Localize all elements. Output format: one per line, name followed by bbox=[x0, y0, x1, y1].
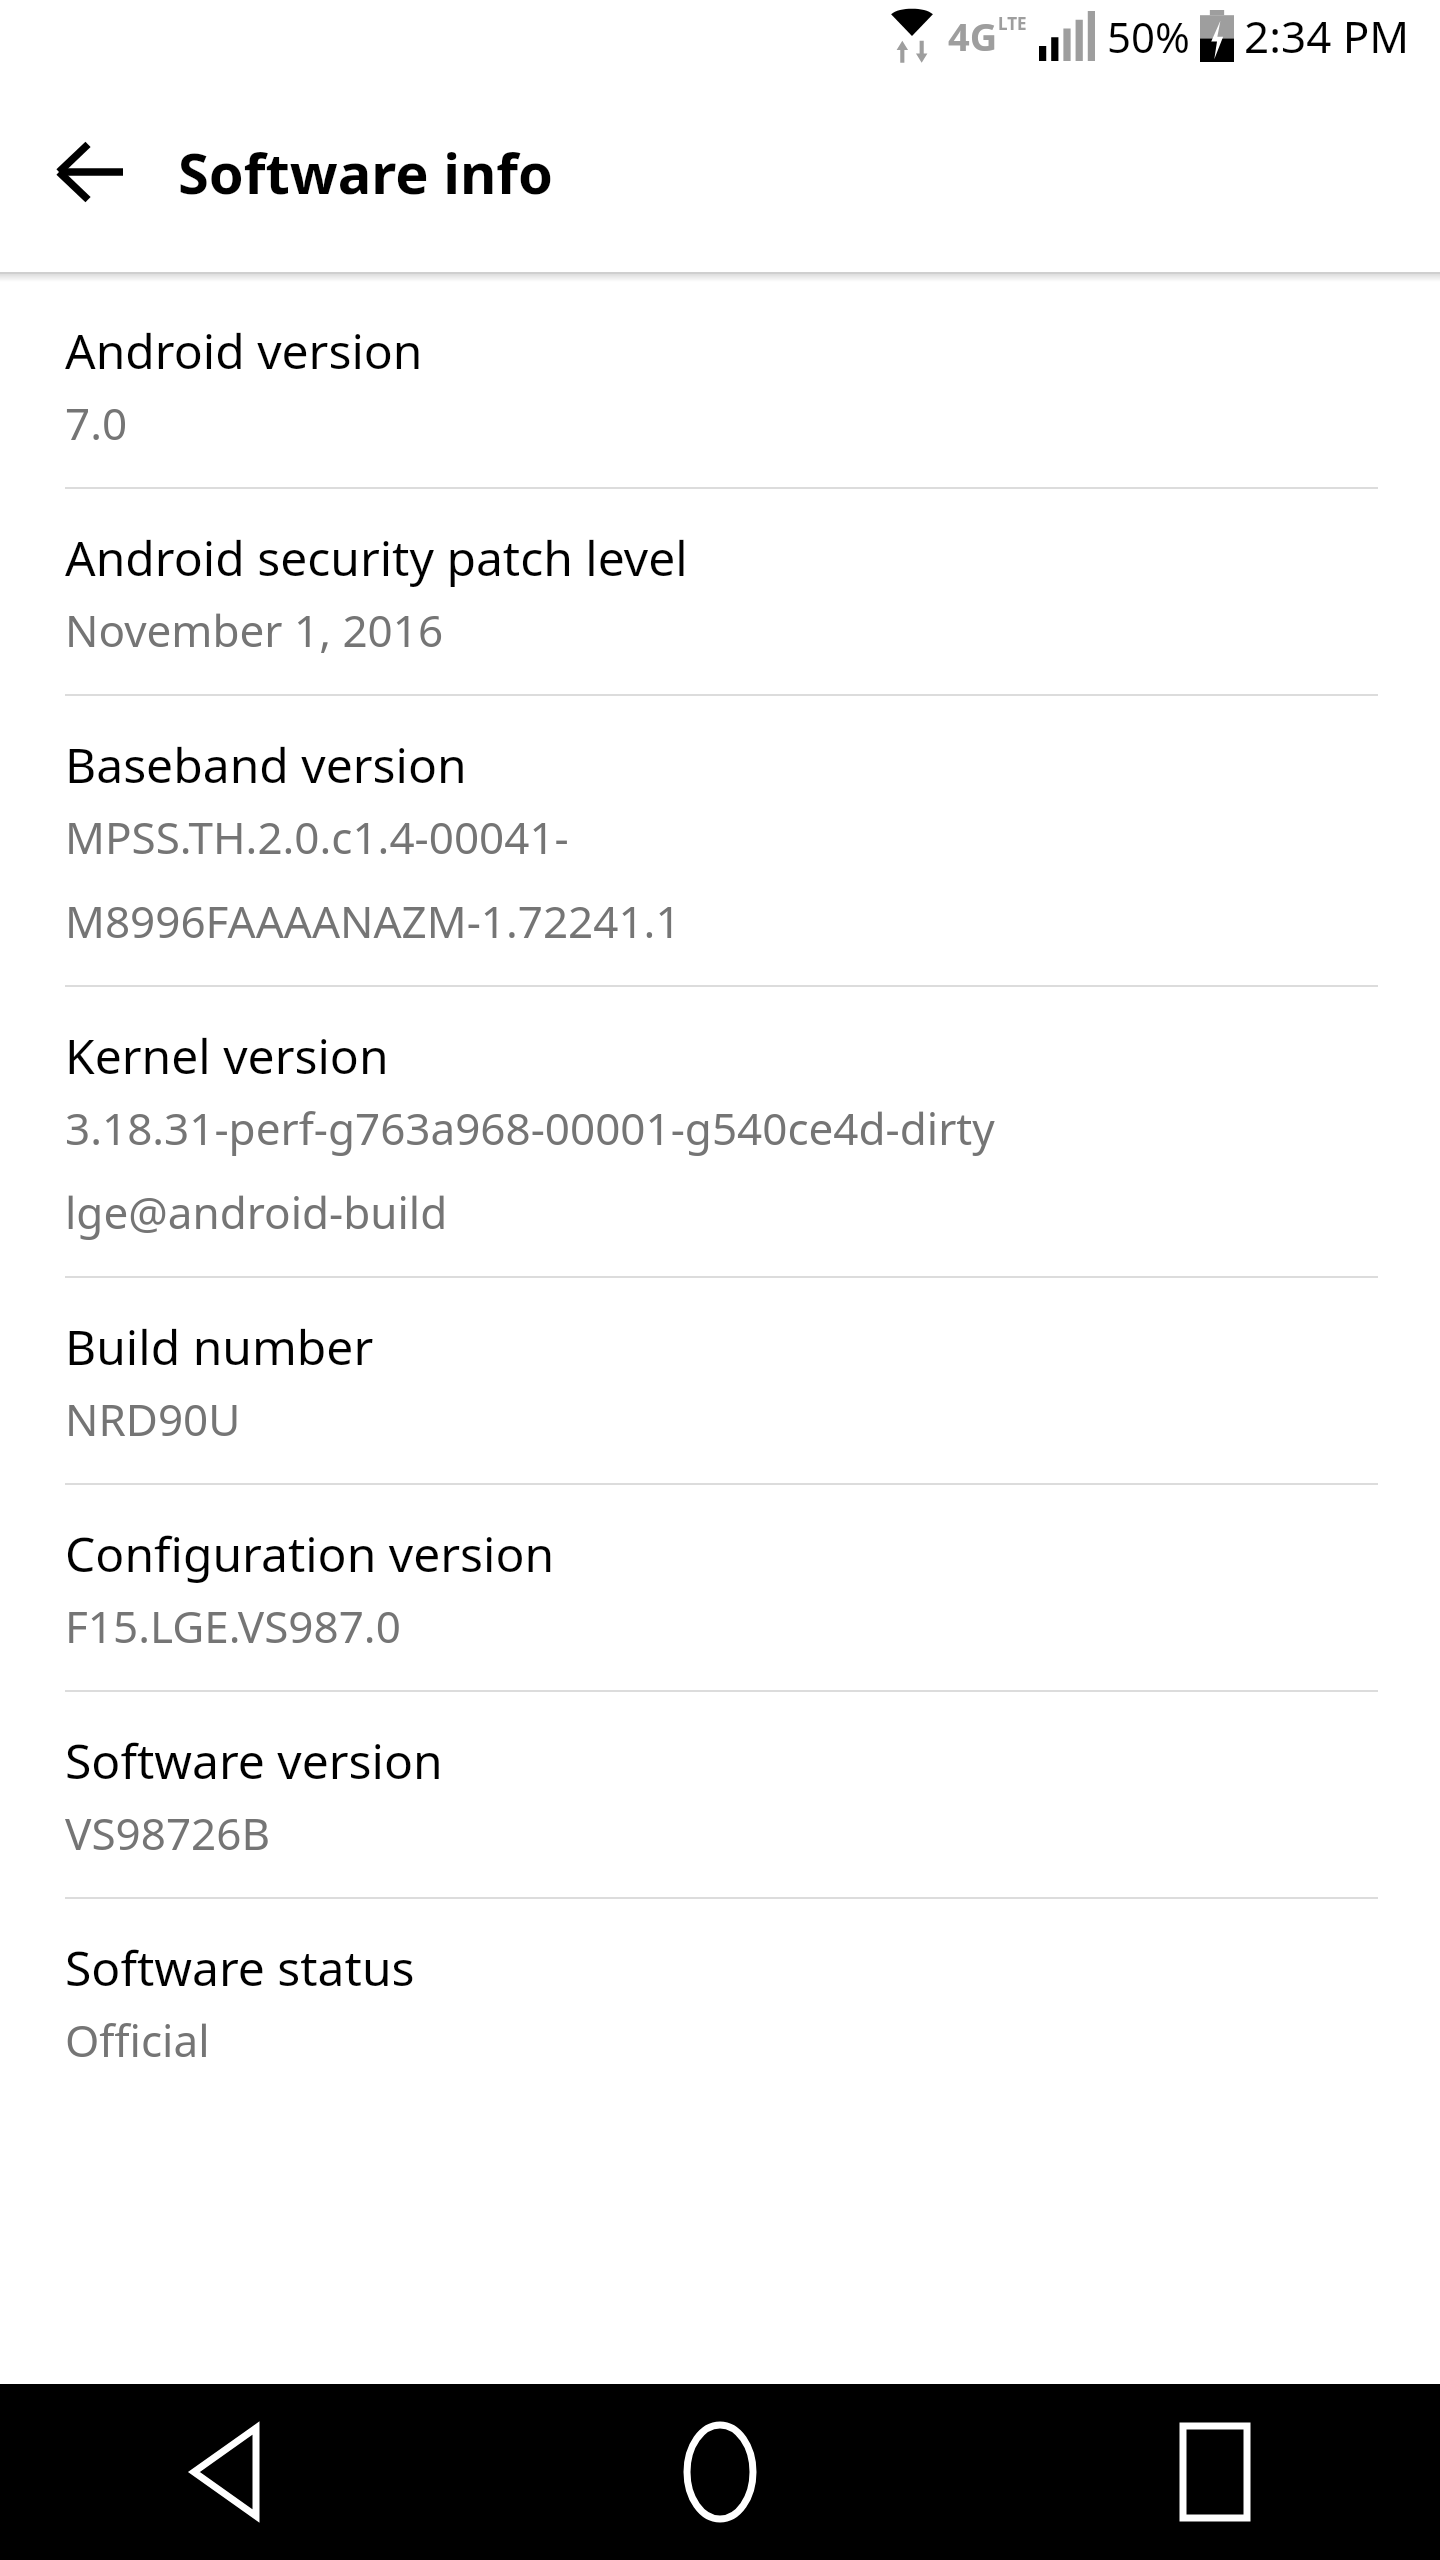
staticText: M8996FAAAANAZM-1.72241.1 bbox=[65, 891, 681, 951]
staticText: Baseband version bbox=[65, 732, 467, 797]
button[interactable]: Android version bbox=[0, 282, 1440, 487]
staticText: LTE bbox=[998, 12, 1027, 35]
button[interactable]: Build number bbox=[0, 1278, 1440, 1483]
staticText: 4G bbox=[948, 10, 998, 62]
staticText: Official bbox=[65, 2010, 210, 2070]
button[interactable]: Recent apps bbox=[960, 2384, 1440, 2560]
button[interactable]: Configuration version bbox=[0, 1485, 1440, 1690]
staticText: Configuration version bbox=[65, 1521, 555, 1586]
staticText: Android security patch level bbox=[65, 525, 688, 590]
staticText: lge@android-build bbox=[65, 1182, 448, 1242]
staticText: Kernel version bbox=[65, 1023, 389, 1088]
staticText: 3.18.31-perf-g763a968-00001-g540ce4d-dir… bbox=[65, 1098, 995, 1158]
staticText: MPSS.TH.2.0.c1.4-00041- bbox=[65, 807, 569, 867]
staticText: Android version bbox=[65, 318, 423, 383]
button[interactable]: Software status bbox=[0, 1899, 1440, 2104]
button[interactable]: Software version bbox=[0, 1692, 1440, 1897]
button[interactable]: Back bbox=[18, 100, 162, 244]
staticText: 2:34 PM bbox=[1244, 6, 1410, 66]
staticText: Build number bbox=[65, 1314, 374, 1379]
button[interactable]: Baseband version bbox=[0, 696, 1440, 985]
button[interactable]: Home bbox=[480, 2384, 960, 2560]
button[interactable]: Back bbox=[0, 2384, 480, 2560]
staticText: Software status bbox=[65, 1935, 415, 2000]
staticText: Software info bbox=[178, 134, 554, 210]
staticText: NRD90U bbox=[65, 1389, 241, 1449]
button[interactable]: Android security patch level bbox=[0, 489, 1440, 694]
staticText: VS98726B bbox=[65, 1803, 270, 1863]
staticText: November 1, 2016 bbox=[65, 600, 444, 660]
button[interactable]: Kernel version bbox=[0, 987, 1440, 1276]
staticText: F15.LGE.VS987.0 bbox=[65, 1596, 401, 1656]
staticText: 7.0 bbox=[65, 393, 128, 453]
staticText: 50% bbox=[1107, 8, 1190, 65]
staticText: Software version bbox=[65, 1728, 443, 1793]
